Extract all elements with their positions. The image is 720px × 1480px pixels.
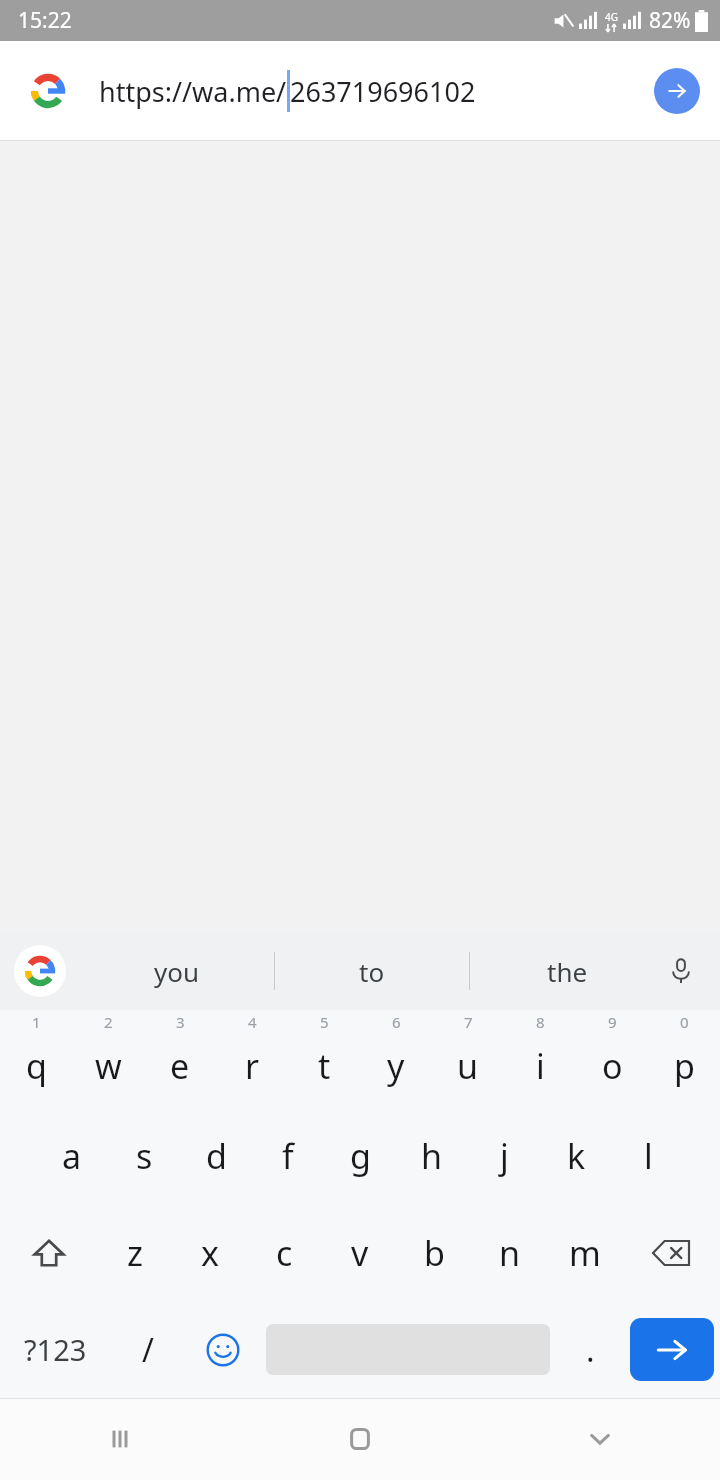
staticText: 4G bbox=[605, 10, 618, 24]
staticText: h bbox=[421, 1133, 443, 1179]
button[interactable]: you bbox=[80, 932, 274, 1010]
staticText: / bbox=[142, 1328, 154, 1372]
staticText: 263719696102 bbox=[290, 73, 476, 110]
button[interactable]: 8 bbox=[504, 1010, 576, 1107]
staticText: y bbox=[387, 1043, 405, 1089]
staticText: b bbox=[424, 1230, 445, 1276]
button[interactable]: Backspace bbox=[622, 1204, 720, 1301]
staticText: a bbox=[62, 1133, 82, 1179]
staticText: 3 bbox=[176, 1012, 185, 1032]
button[interactable]: 7 bbox=[432, 1010, 504, 1107]
staticText: p bbox=[674, 1043, 695, 1089]
staticText: s bbox=[136, 1133, 153, 1179]
staticText: x bbox=[201, 1230, 219, 1276]
staticText: . bbox=[586, 1328, 595, 1372]
button[interactable]: Shift bbox=[0, 1204, 97, 1301]
button[interactable]: Recent apps bbox=[0, 1398, 240, 1480]
button[interactable]: a bbox=[36, 1107, 108, 1204]
staticText: l bbox=[644, 1133, 653, 1179]
staticText: ?123 bbox=[24, 1330, 87, 1369]
button[interactable]: Home bbox=[240, 1398, 480, 1480]
staticText: 7 bbox=[464, 1012, 473, 1032]
button[interactable]: 5 bbox=[288, 1010, 360, 1107]
button[interactable]: k bbox=[540, 1107, 612, 1204]
staticText: o bbox=[602, 1043, 623, 1089]
button[interactable]: x bbox=[172, 1204, 247, 1301]
button[interactable]: Search engine bbox=[20, 63, 76, 119]
button[interactable]: Enter bbox=[630, 1318, 714, 1381]
staticText: q bbox=[26, 1043, 47, 1089]
staticText: 8 bbox=[536, 1012, 545, 1032]
button[interactable]: v bbox=[322, 1204, 397, 1301]
staticText: 0 bbox=[680, 1012, 689, 1032]
staticText: 2 bbox=[104, 1012, 113, 1032]
staticText: c bbox=[276, 1230, 293, 1276]
staticText: v bbox=[351, 1230, 369, 1276]
button[interactable]: . bbox=[556, 1301, 624, 1398]
button[interactable]: to bbox=[275, 932, 469, 1010]
staticText: 4 bbox=[248, 1012, 257, 1032]
button[interactable]: 1 bbox=[0, 1010, 72, 1107]
button[interactable]: Voice input bbox=[656, 946, 706, 996]
staticText: u bbox=[457, 1043, 479, 1089]
button[interactable]: Go bbox=[654, 68, 700, 114]
button[interactable]: 0 bbox=[648, 1010, 720, 1107]
staticText: t bbox=[318, 1043, 331, 1089]
staticText: 9 bbox=[608, 1012, 617, 1032]
staticText: i bbox=[536, 1043, 545, 1089]
button[interactable]: h bbox=[396, 1107, 468, 1204]
button[interactable]: f bbox=[252, 1107, 324, 1204]
button[interactable]: l bbox=[612, 1107, 684, 1204]
staticText: 15:22 bbox=[18, 6, 72, 35]
button[interactable]: m bbox=[547, 1204, 622, 1301]
button[interactable]: d bbox=[180, 1107, 252, 1204]
staticText: m bbox=[569, 1230, 601, 1276]
button[interactable]: / bbox=[110, 1301, 185, 1398]
staticText: j bbox=[500, 1133, 509, 1179]
staticText: w bbox=[95, 1043, 122, 1089]
button[interactable]: n bbox=[472, 1204, 547, 1301]
staticText: 82% bbox=[649, 6, 691, 35]
staticText: you bbox=[154, 954, 200, 989]
staticText: 6 bbox=[392, 1012, 401, 1032]
button[interactable]: 9 bbox=[576, 1010, 648, 1107]
button[interactable]: Emoji bbox=[185, 1301, 260, 1398]
button[interactable]: ?123 bbox=[0, 1301, 110, 1398]
staticText: e bbox=[170, 1043, 190, 1089]
staticText: 1 bbox=[32, 1012, 41, 1032]
button[interactable]: 6 bbox=[360, 1010, 432, 1107]
staticText: n bbox=[499, 1230, 521, 1276]
button[interactable]: s bbox=[108, 1107, 180, 1204]
staticText: f bbox=[282, 1133, 294, 1179]
button[interactable]: j bbox=[468, 1107, 540, 1204]
button[interactable]: Google bbox=[14, 945, 66, 997]
staticText: g bbox=[350, 1133, 371, 1179]
button[interactable]: 2 bbox=[72, 1010, 144, 1107]
button[interactable]: z bbox=[97, 1204, 172, 1301]
staticText: https://wa.me/ bbox=[99, 73, 287, 110]
staticText: 5 bbox=[320, 1012, 329, 1032]
staticText: r bbox=[245, 1043, 260, 1089]
staticText: the bbox=[547, 954, 588, 989]
button[interactable]: 3 bbox=[144, 1010, 216, 1107]
button[interactable]: Hide keyboard bbox=[480, 1398, 720, 1480]
button[interactable]: 4 bbox=[216, 1010, 288, 1107]
staticText: k bbox=[567, 1133, 586, 1179]
staticText: z bbox=[127, 1230, 143, 1276]
staticText: to bbox=[359, 954, 385, 989]
staticText: d bbox=[206, 1133, 227, 1179]
button[interactable]: b bbox=[397, 1204, 472, 1301]
button[interactable]: the bbox=[470, 932, 664, 1010]
button[interactable]: c bbox=[247, 1204, 322, 1301]
button[interactable]: g bbox=[324, 1107, 396, 1204]
